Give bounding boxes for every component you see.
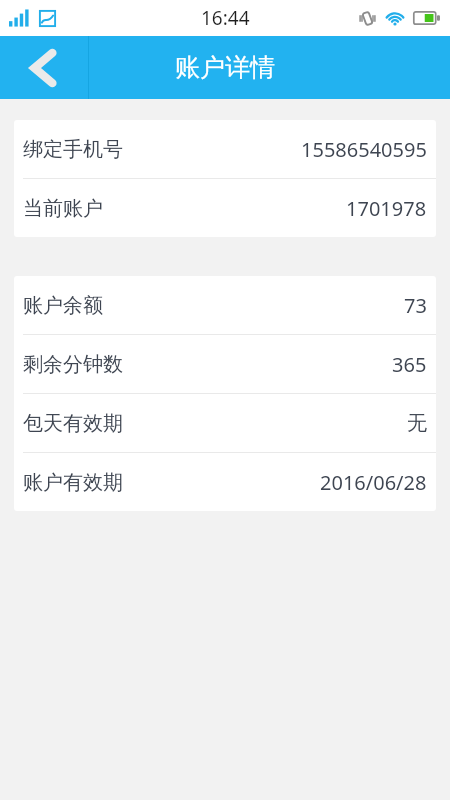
staticText: 绑定手机号: [23, 137, 123, 162]
staticText: 1701978: [346, 195, 427, 222]
staticText: 剩余分钟数: [23, 352, 123, 377]
staticText: 365: [392, 351, 427, 378]
button[interactable]: 包天有效期: [14, 394, 436, 452]
button[interactable]: 账户有效期: [14, 453, 436, 511]
staticText: 账户余额: [23, 293, 103, 318]
staticText: 账户详情: [175, 52, 275, 83]
button[interactable]: 绑定手机号: [14, 120, 436, 178]
staticText: 15586540595: [301, 136, 427, 163]
button[interactable]: 剩余分钟数: [14, 335, 436, 393]
button[interactable]: 账户余额: [14, 276, 436, 334]
button[interactable]: Back: [0, 36, 88, 99]
staticText: 当前账户: [23, 196, 103, 221]
button[interactable]: 当前账户: [14, 179, 436, 237]
staticText: 包天有效期: [23, 411, 123, 436]
staticText: 2016/06/28: [320, 469, 427, 496]
staticText: 账户有效期: [23, 470, 123, 495]
staticText: 无: [407, 411, 427, 436]
staticText: 73: [404, 292, 427, 319]
staticText: 16:44: [201, 5, 250, 31]
